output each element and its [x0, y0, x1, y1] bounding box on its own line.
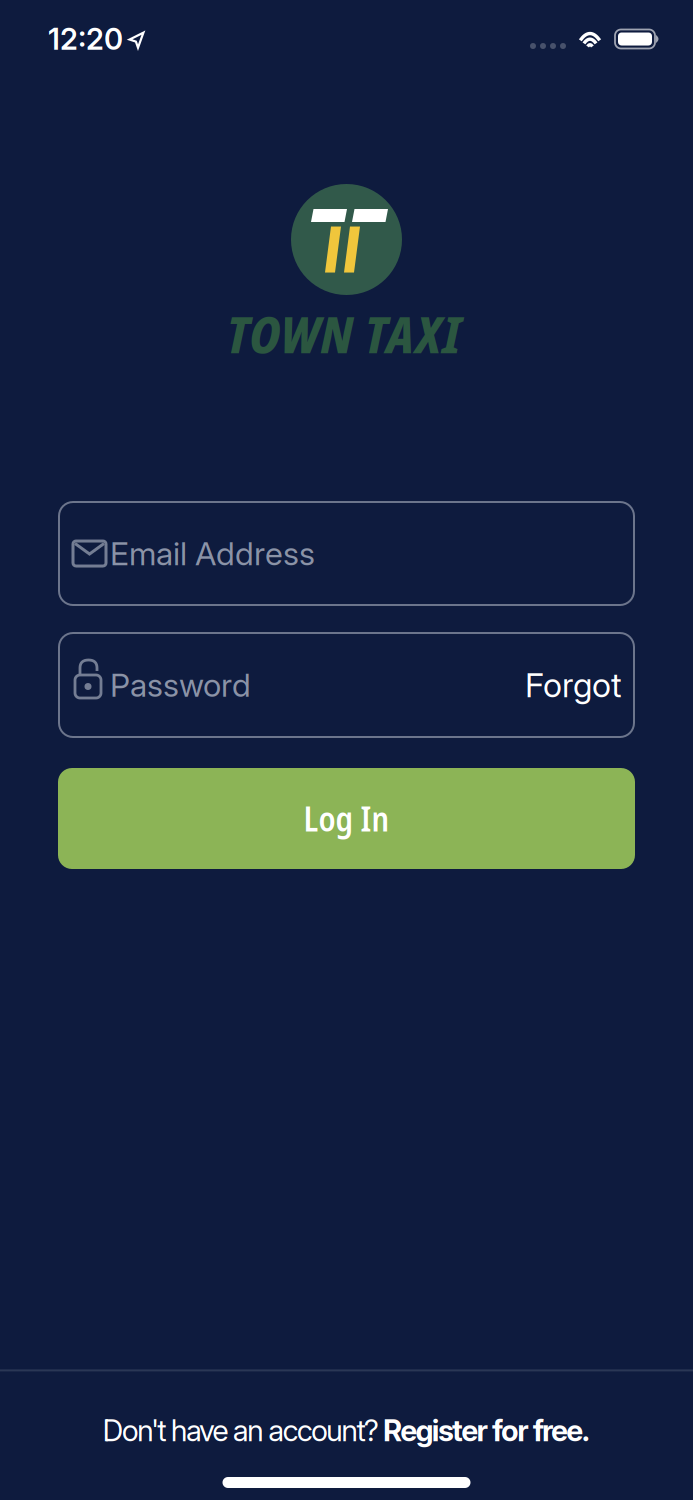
button[interactable]: Don't have an account? Register for free… — [102, 1371, 590, 1448]
staticText: Email Address — [110, 534, 315, 573]
staticText: Don't have an account? Register for free… — [102, 1413, 590, 1448]
staticText: 12:20 — [48, 21, 123, 57]
staticText: Log In — [303, 796, 389, 841]
button[interactable]: Email Address — [59, 502, 634, 605]
staticText: TOWN TAXI — [226, 299, 460, 368]
staticText: Forgot — [525, 665, 622, 705]
button[interactable]: Log In — [58, 768, 635, 869]
button[interactable]: Forgot — [525, 665, 622, 705]
staticText: Password — [110, 666, 251, 704]
button[interactable]: Password — [59, 633, 634, 737]
